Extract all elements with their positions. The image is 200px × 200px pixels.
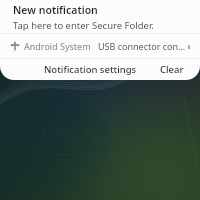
staticText: Tap here to enter Secure Folder. [13,19,154,32]
button[interactable]: Clear [153,59,191,80]
staticText: Notification settings [44,63,137,76]
staticText: Android System [24,40,91,52]
button[interactable]: New notification [0,0,200,33]
staticText: USB connector connected. [98,40,189,52]
button[interactable]: Android System [0,34,200,58]
staticText: New notification [13,3,98,17]
staticText: Clear [160,63,184,76]
button[interactable]: Notification settings [37,59,144,80]
